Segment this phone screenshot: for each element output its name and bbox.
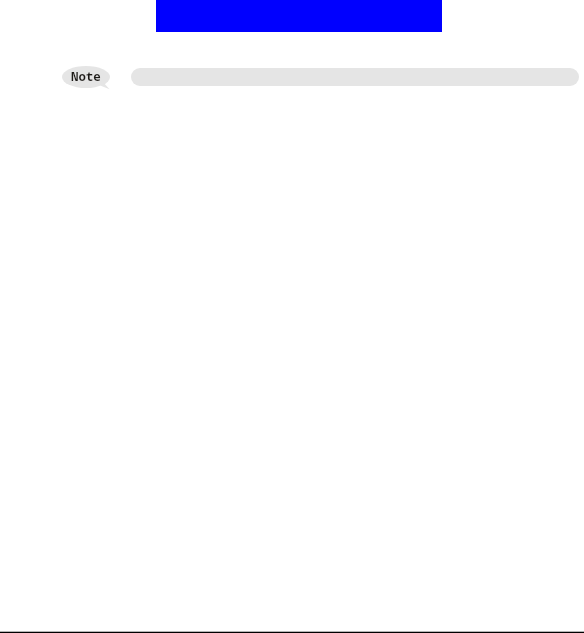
button[interactable]: Note (62, 66, 110, 90)
staticText: Note (71, 68, 101, 85)
